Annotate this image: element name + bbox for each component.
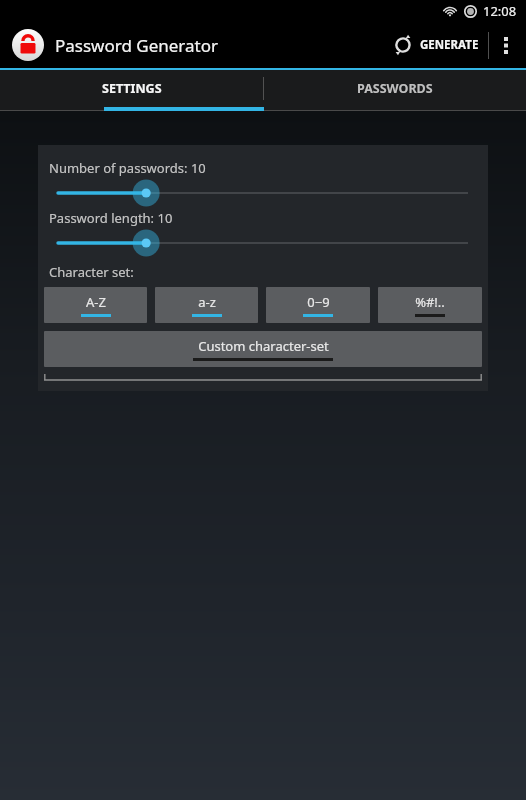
- staticText: A-Z: [86, 293, 106, 311]
- staticText: PASSWORDS: [357, 80, 433, 97]
- button[interactable]: Custom character-set: [44, 331, 482, 367]
- staticText: %#!..: [415, 293, 445, 311]
- staticText: Password Generator: [55, 34, 219, 57]
- button[interactable]: PASSWORDS: [263, 70, 526, 111]
- staticText: Character set:: [49, 263, 134, 281]
- button[interactable]: A-Z: [44, 287, 147, 323]
- button[interactable]: Slider: [44, 227, 482, 259]
- staticText: a-z: [198, 293, 216, 311]
- button[interactable]: a-z: [155, 287, 258, 323]
- button[interactable]: Slider: [44, 177, 482, 209]
- button[interactable]: GENERATE: [384, 24, 488, 66]
- button[interactable]: SETTINGS: [0, 70, 263, 111]
- staticText: GENERATE: [420, 37, 479, 53]
- staticText: SETTINGS: [102, 80, 162, 97]
- staticText: Password length: 10: [49, 209, 173, 227]
- button[interactable]: %#!..: [378, 287, 482, 323]
- staticText: Custom character-set: [198, 337, 329, 355]
- staticText: 0−9: [307, 293, 330, 311]
- button[interactable]: 0−9: [266, 287, 370, 323]
- button[interactable]: More options: [489, 22, 523, 68]
- staticText: 12:08: [483, 2, 517, 20]
- staticText: Number of passwords: 10: [49, 159, 206, 177]
